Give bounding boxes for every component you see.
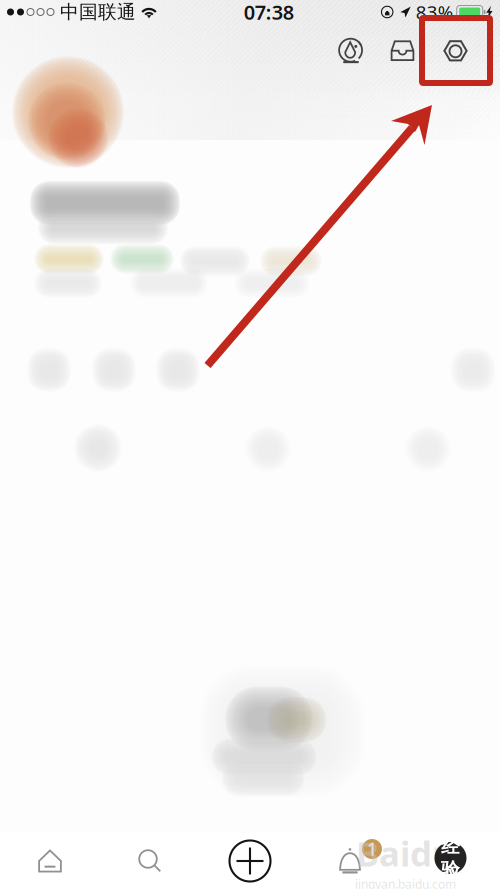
staticText: Baidu [356, 830, 455, 876]
button[interactable]: Notifications, 1 unread [300, 834, 400, 888]
staticText: 中国联通 [60, 0, 136, 23]
staticText: 07:38 [244, 0, 294, 25]
button[interactable]: Inbox [388, 36, 417, 65]
button[interactable]: Home [0, 834, 100, 888]
staticText: 经验 [441, 835, 460, 881]
button[interactable]: Tyre pressure [336, 36, 366, 66]
staticText: 1 [367, 837, 377, 860]
button[interactable]: Search [100, 834, 200, 888]
staticText: 83% [416, 0, 454, 24]
staticText: jingyan.baidu.com [355, 876, 456, 889]
button[interactable]: Profile [400, 834, 500, 888]
button[interactable]: Create post [200, 834, 300, 888]
button[interactable]: Settings [441, 36, 470, 65]
